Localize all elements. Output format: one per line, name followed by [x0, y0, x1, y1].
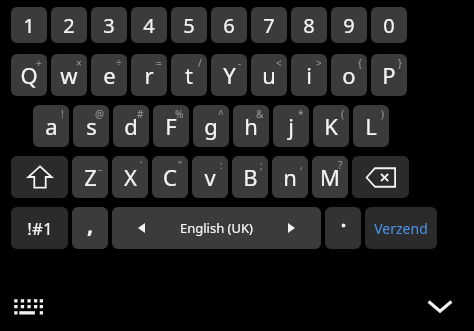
button[interactable]: P	[371, 54, 407, 96]
staticText: !	[61, 107, 64, 121]
button[interactable]: u	[251, 54, 287, 96]
button[interactable]: 8	[291, 7, 327, 43]
button[interactable]: g	[193, 105, 229, 147]
staticText: 7	[263, 12, 275, 39]
button[interactable]: o	[331, 54, 367, 96]
staticText: n	[283, 162, 297, 192]
button[interactable]: j	[273, 105, 309, 147]
staticText: }	[398, 56, 402, 70]
staticText: English (UK)	[180, 219, 253, 237]
staticText: g	[204, 111, 218, 141]
button[interactable]: Hide keyboard	[418, 284, 462, 328]
button[interactable]: s	[73, 105, 109, 147]
staticText: j	[288, 111, 294, 141]
staticText: 1	[23, 12, 35, 39]
button[interactable]: Verzend	[365, 207, 437, 249]
button[interactable]: Y	[211, 54, 247, 96]
button[interactable]: B	[232, 156, 268, 198]
button[interactable]: r	[131, 54, 167, 96]
button[interactable]: Backspace	[352, 156, 409, 198]
button[interactable]: F	[153, 105, 189, 147]
staticText: o	[342, 60, 356, 90]
button[interactable]: e	[91, 54, 127, 96]
staticText: 2	[63, 12, 75, 39]
staticText: ÷	[116, 56, 122, 70]
button[interactable]: d	[113, 105, 149, 147]
staticText: #	[137, 107, 144, 121]
button[interactable]: Space, English (UK)	[112, 207, 321, 249]
staticText: (	[341, 107, 344, 121]
staticText: B	[243, 162, 258, 192]
staticText: *	[298, 107, 304, 121]
staticText: 0	[383, 12, 395, 39]
button[interactable]: L	[353, 105, 389, 147]
staticText: Q	[20, 60, 38, 90]
staticText: a	[45, 111, 58, 141]
button[interactable]: Z	[72, 156, 108, 198]
staticText: ,	[300, 158, 303, 172]
button[interactable]: v	[192, 156, 228, 198]
button[interactable]: 6	[211, 7, 247, 43]
staticText: 8	[303, 12, 315, 39]
staticText: 9	[343, 12, 355, 39]
button[interactable]: n	[272, 156, 308, 198]
button[interactable]: 4	[131, 7, 167, 43]
staticText: "	[178, 158, 183, 172]
staticText: -	[238, 56, 242, 70]
staticText: d	[124, 111, 138, 141]
button[interactable]: 2	[51, 7, 87, 43]
button[interactable]: 3	[91, 7, 127, 43]
staticText: ?	[338, 158, 343, 172]
button[interactable]: M	[312, 156, 348, 198]
staticText: s	[86, 111, 97, 141]
staticText: i	[306, 60, 312, 90]
staticText: %	[175, 107, 184, 121]
staticText: Verzend	[374, 219, 428, 238]
button[interactable]: Shift	[11, 156, 68, 198]
staticText: ;	[260, 158, 263, 172]
button[interactable]: ,	[72, 207, 108, 249]
staticText: 3	[103, 12, 115, 39]
button[interactable]: Switch keyboard	[6, 284, 50, 328]
staticText: e	[103, 60, 116, 90]
staticText: {	[358, 56, 362, 70]
staticText: w	[60, 60, 78, 90]
staticText: Z	[84, 162, 97, 192]
button[interactable]: 5	[171, 7, 207, 43]
staticText: v	[204, 162, 216, 192]
staticText: '	[140, 158, 143, 172]
button[interactable]: t	[171, 54, 207, 96]
staticText: _	[98, 158, 103, 172]
staticText: =	[156, 56, 162, 70]
staticText: )	[381, 107, 384, 121]
button[interactable]: 9	[331, 7, 367, 43]
button[interactable]: 7	[251, 7, 287, 43]
button[interactable]: 0	[371, 7, 407, 43]
button[interactable]: X	[112, 156, 148, 198]
button[interactable]: i	[291, 54, 327, 96]
staticText: F	[165, 111, 177, 141]
staticText: Y	[223, 60, 236, 90]
button[interactable]: Q	[11, 54, 47, 96]
button[interactable]: w	[51, 54, 87, 96]
staticText: C	[163, 162, 177, 192]
button[interactable]	[325, 207, 361, 249]
button[interactable]: a	[33, 105, 69, 147]
staticText: !#1	[27, 217, 53, 240]
button[interactable]: 1	[11, 7, 47, 43]
staticText: @	[95, 107, 104, 121]
button[interactable]: C	[152, 156, 188, 198]
staticText: u	[262, 60, 276, 90]
staticText: 5	[183, 12, 195, 39]
staticText: >	[316, 56, 322, 70]
staticText: M	[320, 162, 340, 192]
button[interactable]: h	[233, 105, 269, 147]
staticText: h	[244, 111, 258, 141]
staticText: ,	[87, 209, 94, 239]
staticText: t	[185, 60, 193, 90]
staticText: X	[124, 162, 137, 192]
button[interactable]: !#1	[11, 207, 68, 249]
staticText: L	[365, 111, 377, 141]
staticText: r	[144, 60, 154, 90]
button[interactable]: K	[313, 105, 349, 147]
